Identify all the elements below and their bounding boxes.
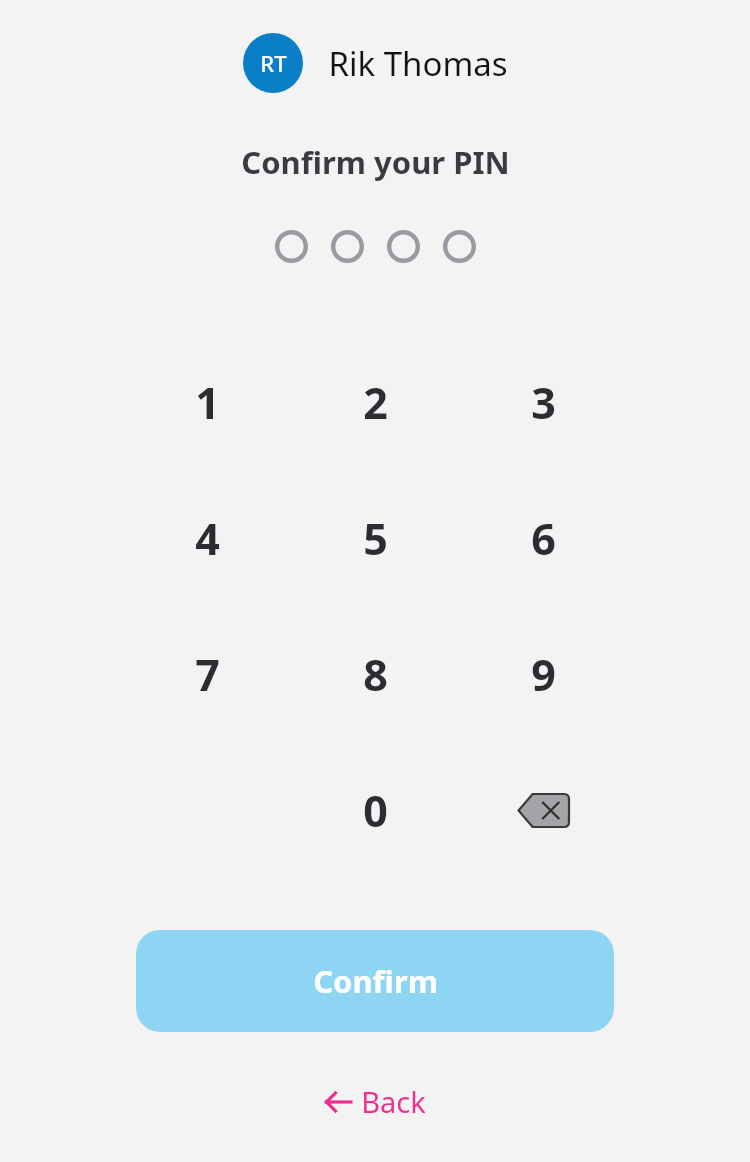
button[interactable]: Back (311, 1074, 440, 1129)
staticText: 3 (531, 373, 556, 432)
button[interactable]: 7 (123, 606, 291, 742)
button[interactable]: 0 (291, 742, 459, 878)
button[interactable]: 3 (459, 334, 627, 470)
button[interactable]: 5 (291, 470, 459, 606)
staticText: 0 (363, 781, 388, 840)
staticText: 8 (363, 645, 388, 704)
staticText: Back (361, 1082, 426, 1121)
staticText: 9 (531, 645, 556, 704)
button[interactable]: 4 (123, 470, 291, 606)
staticText: 1 (195, 373, 220, 432)
button[interactable]: 8 (291, 606, 459, 742)
staticText: 4 (195, 509, 220, 568)
staticText: 6 (531, 509, 556, 568)
staticText: 2 (363, 373, 388, 432)
button[interactable]: 1 (123, 334, 291, 470)
staticText: 5 (363, 509, 388, 568)
staticText: RT (260, 48, 287, 78)
staticText: Confirm (313, 960, 438, 1002)
staticText: Confirm your PIN (241, 141, 510, 183)
button[interactable]: 6 (459, 470, 627, 606)
button[interactable]: Confirm (136, 930, 614, 1032)
staticText: Rik Thomas (328, 41, 508, 86)
button[interactable]: Backspace (459, 742, 627, 878)
button[interactable]: RT (239, 31, 512, 95)
button[interactable]: 9 (459, 606, 627, 742)
button[interactable]: 2 (291, 334, 459, 470)
staticText: 7 (195, 645, 220, 704)
